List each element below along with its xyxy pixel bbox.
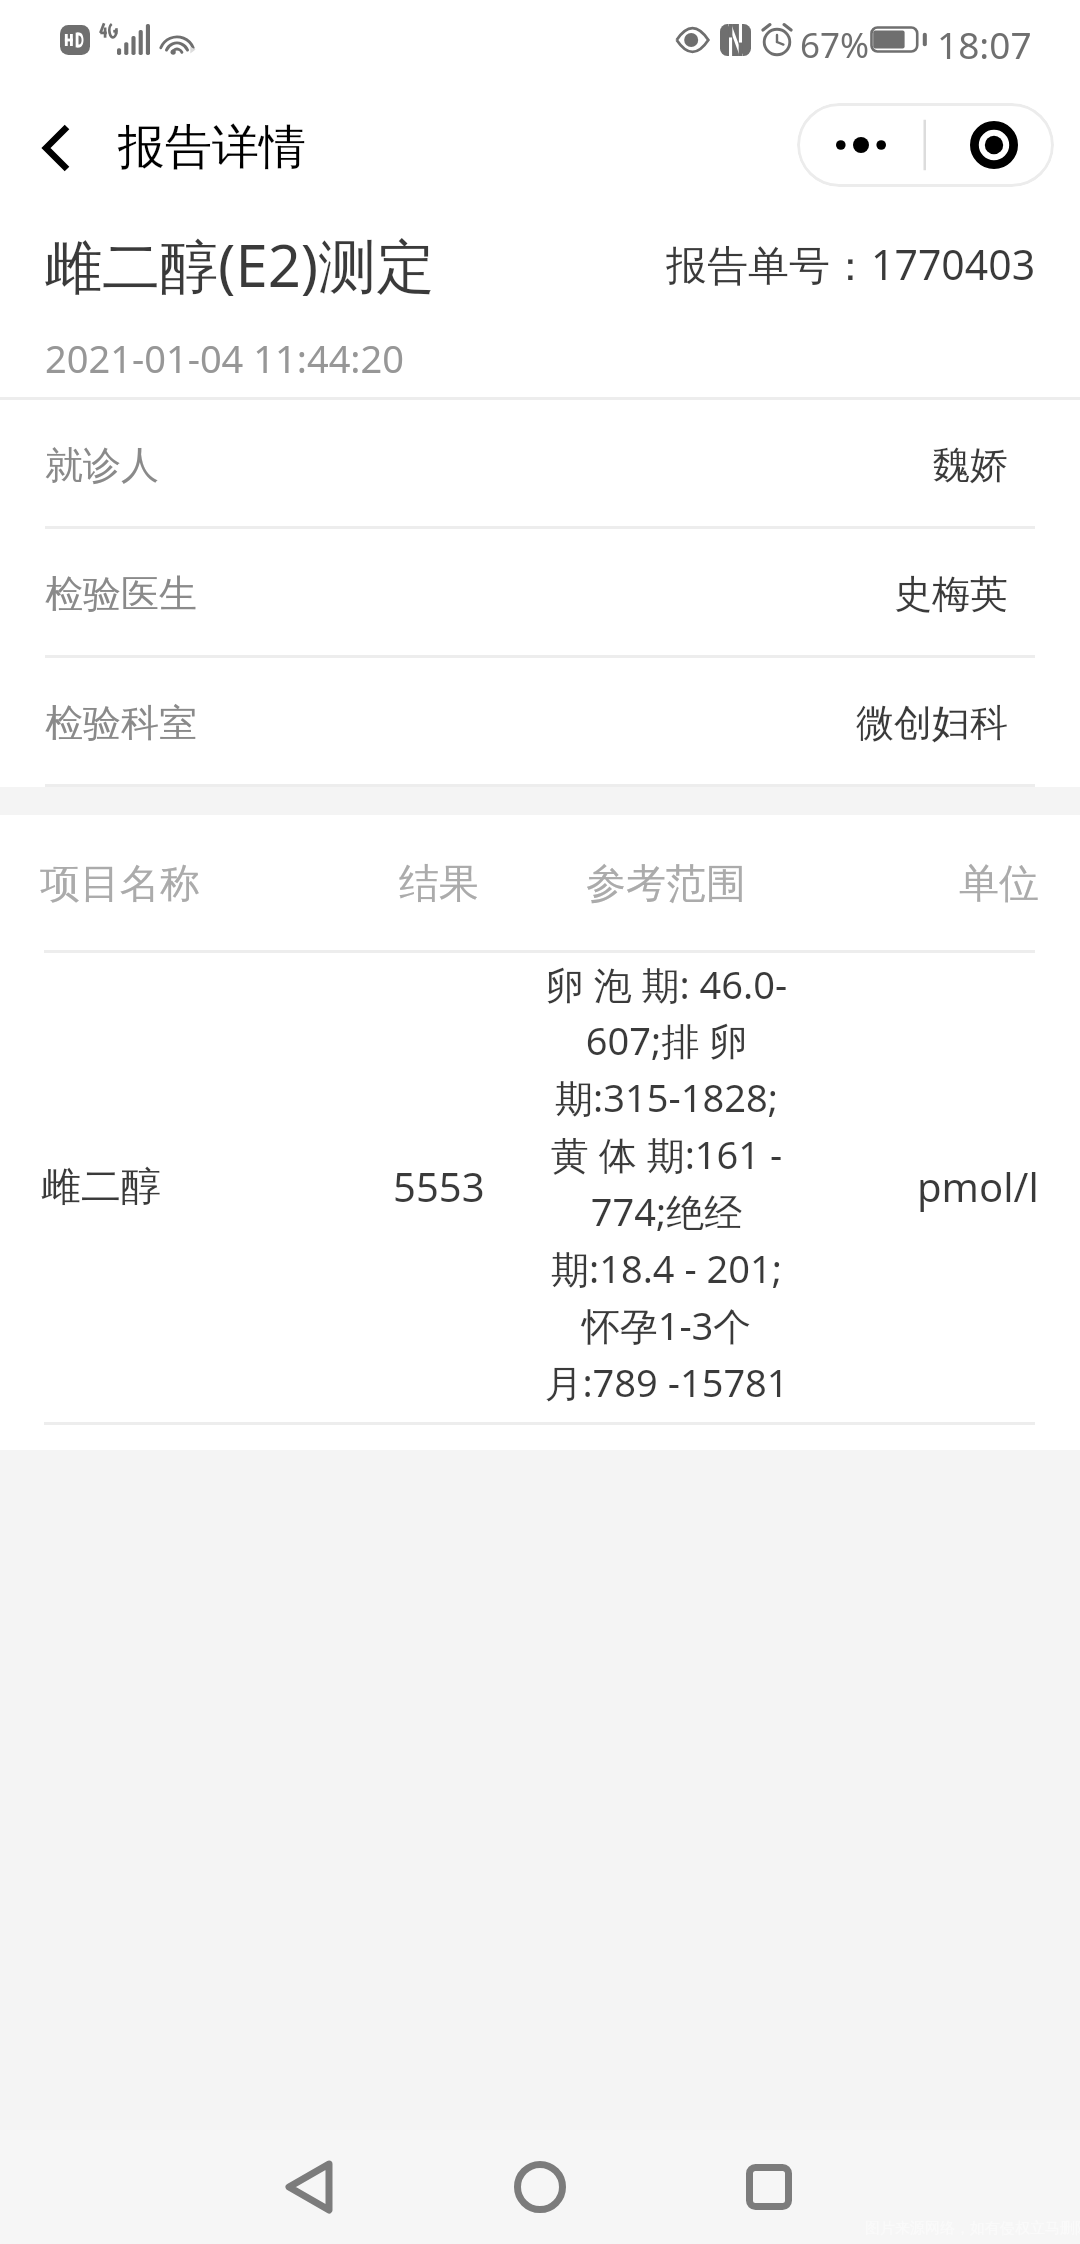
staticText: 微创妇科 bbox=[856, 699, 1008, 747]
button[interactable]: Back bbox=[194, 2130, 424, 2244]
staticText: 单位 bbox=[959, 858, 1039, 908]
button[interactable]: 检验医生 bbox=[0, 529, 1080, 658]
staticText: 检验科室 bbox=[45, 699, 197, 747]
staticText: pmol/l bbox=[917, 1159, 1039, 1213]
staticText: 史梅英 bbox=[894, 570, 1008, 618]
staticText: 2021-01-04 11:44:20 bbox=[45, 332, 405, 384]
staticText: 雌二醇 bbox=[41, 1161, 161, 1211]
button[interactable]: Home bbox=[425, 2130, 655, 2244]
button[interactable]: Recent apps bbox=[654, 2130, 884, 2244]
button[interactable]: More options bbox=[797, 103, 925, 187]
button[interactable]: 检验科室 bbox=[0, 658, 1080, 787]
staticText: 结果 bbox=[399, 858, 479, 908]
button[interactable]: 就诊人 bbox=[0, 400, 1080, 529]
staticText: 5553 bbox=[393, 1159, 485, 1213]
staticText: 检验医生 bbox=[45, 570, 197, 618]
button[interactable]: Back bbox=[0, 95, 112, 200]
staticText: 卵 泡 期: 46.0- 607;排 卵 期:315-1828; 黄 体 期:1… bbox=[544, 958, 789, 1408]
staticText: 魏娇 bbox=[932, 441, 1008, 489]
staticText: 18:07 bbox=[937, 19, 1032, 69]
button[interactable]: Close bbox=[926, 103, 1054, 187]
staticText: 报告详情 bbox=[118, 118, 306, 177]
staticText: 67% bbox=[800, 21, 870, 69]
staticText: 雌二醇(E2)测定 bbox=[44, 225, 435, 304]
staticText: 就诊人 bbox=[45, 441, 159, 489]
staticText: 参考范围 bbox=[586, 858, 746, 908]
staticText: 项目名称 bbox=[40, 858, 200, 908]
staticText: 报告单号：1770403 bbox=[666, 236, 1036, 292]
